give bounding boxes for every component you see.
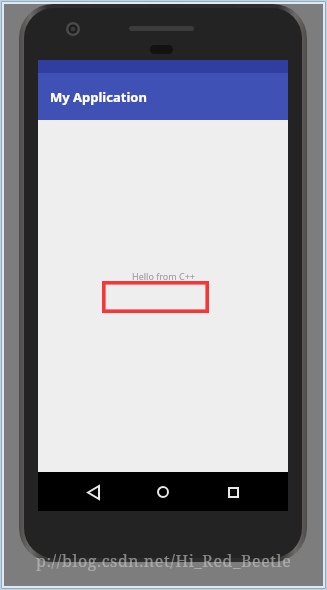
button[interactable]: Home xyxy=(146,475,180,509)
button[interactable]: Back xyxy=(76,475,110,509)
button[interactable]: Recent apps xyxy=(216,475,250,509)
staticText: My Application xyxy=(50,88,147,106)
button[interactable]: My Application xyxy=(38,73,288,120)
staticText: p://blog.csdn.net/Hi_Red_Beetle xyxy=(36,550,292,572)
staticText: Hello from C++ xyxy=(132,270,195,282)
